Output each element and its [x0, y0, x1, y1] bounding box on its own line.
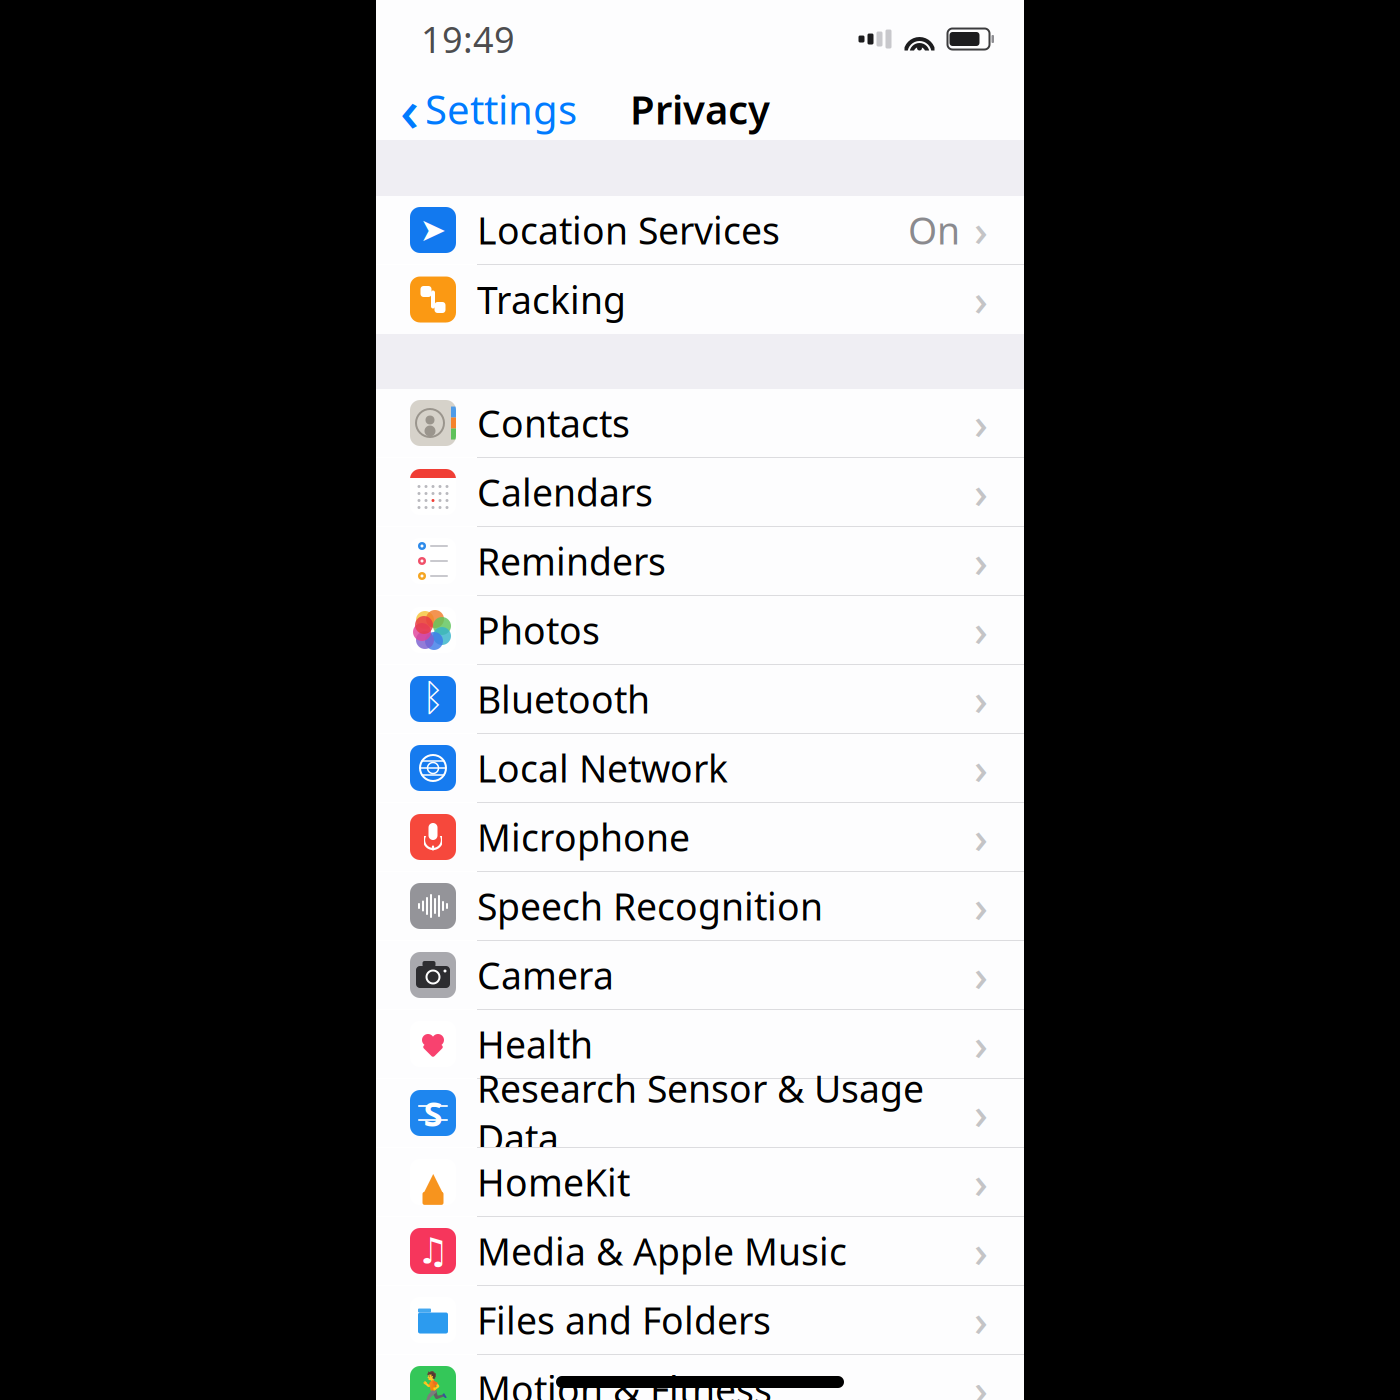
staticText: › [974, 395, 988, 451]
button[interactable]: Speech Recognition [376, 872, 1024, 941]
staticText: › [974, 533, 988, 589]
staticText: › [974, 740, 988, 796]
staticText: ‹ [400, 70, 419, 148]
staticText: Contacts [477, 398, 630, 448]
staticText: 19:49 [421, 15, 515, 63]
button[interactable]: Files and Folders [376, 1286, 1024, 1355]
staticText: ᛒ [422, 681, 444, 717]
staticText: HomeKit [477, 1157, 630, 1207]
staticText: Motion & Fitness [477, 1364, 772, 1400]
staticText: › [974, 1016, 988, 1072]
button[interactable]: ➤ [376, 196, 1024, 265]
button[interactable]: ‹ [376, 78, 587, 140]
staticText: Settings [425, 82, 577, 135]
staticText: ♫ [417, 1231, 449, 1271]
button[interactable]: Reminders [376, 527, 1024, 596]
staticText: Media & Apple Music [477, 1226, 847, 1276]
staticText: Reminders [477, 536, 666, 586]
staticText: › [974, 1154, 988, 1210]
button[interactable]: Contacts [376, 389, 1024, 458]
staticText: ➤ [419, 212, 446, 248]
staticText: Calendars [477, 467, 653, 517]
staticText: Health [477, 1019, 593, 1069]
button[interactable]: Tracking [376, 265, 1024, 334]
staticText: ▲ [423, 1167, 442, 1196]
button[interactable]: Health [376, 1010, 1024, 1079]
staticText: › [974, 271, 988, 328]
staticText: › [974, 947, 988, 1003]
staticText: 🏃 [413, 1371, 453, 1400]
staticText: Research Sensor & Usage Data [477, 1063, 924, 1163]
button[interactable]: S [376, 1079, 1024, 1148]
button[interactable]: ᛒ [376, 665, 1024, 734]
staticText: › [974, 464, 988, 520]
staticText: › [974, 1361, 988, 1400]
button[interactable]: Photos [376, 596, 1024, 665]
button[interactable]: 🏃 [376, 1355, 1024, 1400]
button[interactable]: ▲ [376, 1148, 1024, 1217]
staticText: Local Network [477, 743, 728, 793]
staticText: Files and Folders [477, 1295, 771, 1345]
button[interactable]: Microphone [376, 803, 1024, 872]
staticText: Tracking [477, 275, 626, 324]
button[interactable]: Local Network [376, 734, 1024, 803]
button[interactable]: ♫ [376, 1217, 1024, 1286]
staticText: Camera [477, 950, 614, 1000]
staticText: On [908, 205, 960, 255]
staticText: Location Services [477, 205, 780, 255]
staticText: › [974, 1223, 988, 1279]
staticText: Bluetooth [477, 674, 650, 724]
staticText: › [974, 202, 988, 258]
button[interactable]: Calendars [376, 458, 1024, 527]
staticText: Privacy [630, 82, 770, 135]
button[interactable]: Camera [376, 941, 1024, 1010]
staticText: › [974, 878, 988, 934]
staticText: › [974, 1085, 988, 1141]
staticText: › [974, 1292, 988, 1348]
staticText: Photos [477, 605, 600, 655]
staticText: › [974, 671, 988, 727]
staticText: Speech Recognition [477, 881, 823, 931]
staticText: › [974, 602, 988, 658]
staticText: Microphone [477, 812, 690, 862]
staticText: S [423, 1090, 442, 1136]
staticText: › [974, 809, 988, 865]
